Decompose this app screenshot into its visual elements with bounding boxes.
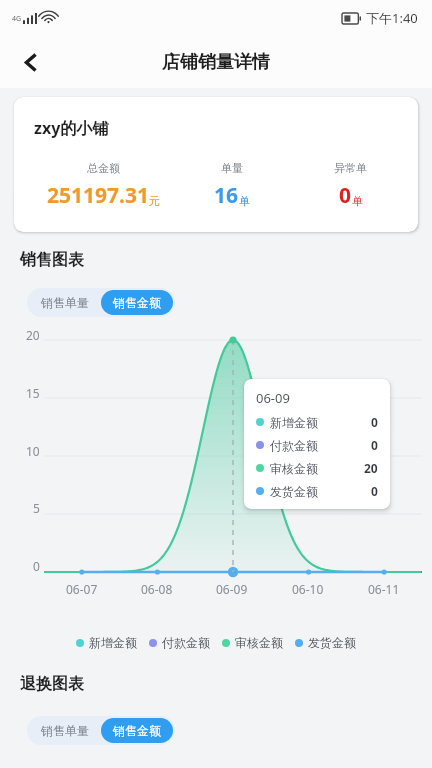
staticText: 审核金额 bbox=[270, 461, 318, 476]
staticText: 发货金额 bbox=[270, 484, 318, 499]
staticText: 总金额 bbox=[87, 161, 120, 175]
staticText: 0 bbox=[371, 414, 378, 430]
staticText: 5 bbox=[33, 500, 40, 514]
button[interactable]: Back bbox=[8, 40, 52, 84]
staticText: 付款金额 bbox=[270, 438, 318, 453]
staticText: 销售单量 bbox=[41, 723, 89, 738]
staticText: 单 bbox=[239, 194, 250, 208]
staticText: 新增金额 bbox=[89, 635, 137, 650]
staticText: 审核金额 bbox=[235, 635, 283, 650]
staticText: 15 bbox=[26, 385, 40, 399]
staticText: 0 bbox=[371, 437, 378, 453]
staticText: zxy的小铺 bbox=[34, 117, 109, 139]
staticText: 0 bbox=[339, 181, 352, 210]
staticText: 销售金额 bbox=[113, 295, 161, 310]
staticText: 付款金额 bbox=[162, 635, 210, 650]
staticText: 06-07 bbox=[66, 581, 98, 597]
staticText: 06-08 bbox=[141, 581, 173, 597]
button[interactable]: 销售金额 bbox=[101, 718, 173, 743]
staticText: 251197.31 bbox=[47, 181, 149, 210]
staticText: 0 bbox=[33, 558, 40, 572]
staticText: 新增金额 bbox=[270, 415, 318, 430]
staticText: 单 bbox=[352, 194, 363, 208]
staticText: 20 bbox=[364, 460, 378, 476]
staticText: 发货金额 bbox=[308, 635, 356, 650]
staticText: 店铺销量详情 bbox=[162, 51, 270, 74]
staticText: 异常单 bbox=[334, 161, 367, 175]
staticText: 10 bbox=[26, 443, 40, 457]
staticText: 06-11 bbox=[368, 581, 400, 597]
staticText: 退换图表 bbox=[20, 674, 84, 694]
staticText: 06-09 bbox=[216, 581, 248, 597]
staticText: 20 bbox=[26, 327, 40, 341]
staticText: 16 bbox=[214, 181, 239, 210]
button[interactable]: zxy的小铺 bbox=[14, 97, 418, 232]
staticText: 4G bbox=[12, 14, 22, 24]
staticText: 下午1:40 bbox=[366, 9, 418, 27]
staticText: 元 bbox=[149, 194, 160, 208]
staticText: 06-10 bbox=[292, 581, 324, 597]
staticText: 0 bbox=[371, 483, 378, 499]
button[interactable]: 销售金额 bbox=[101, 290, 173, 315]
staticText: 销售图表 bbox=[20, 250, 84, 270]
staticText: 单量 bbox=[221, 161, 243, 175]
staticText: 06-09 bbox=[256, 389, 290, 407]
staticText: 销售单量 bbox=[41, 295, 89, 310]
staticText: 销售金额 bbox=[113, 723, 161, 738]
button[interactable]: 销售单量 bbox=[29, 718, 101, 743]
button[interactable]: 销售单量 bbox=[29, 290, 101, 315]
